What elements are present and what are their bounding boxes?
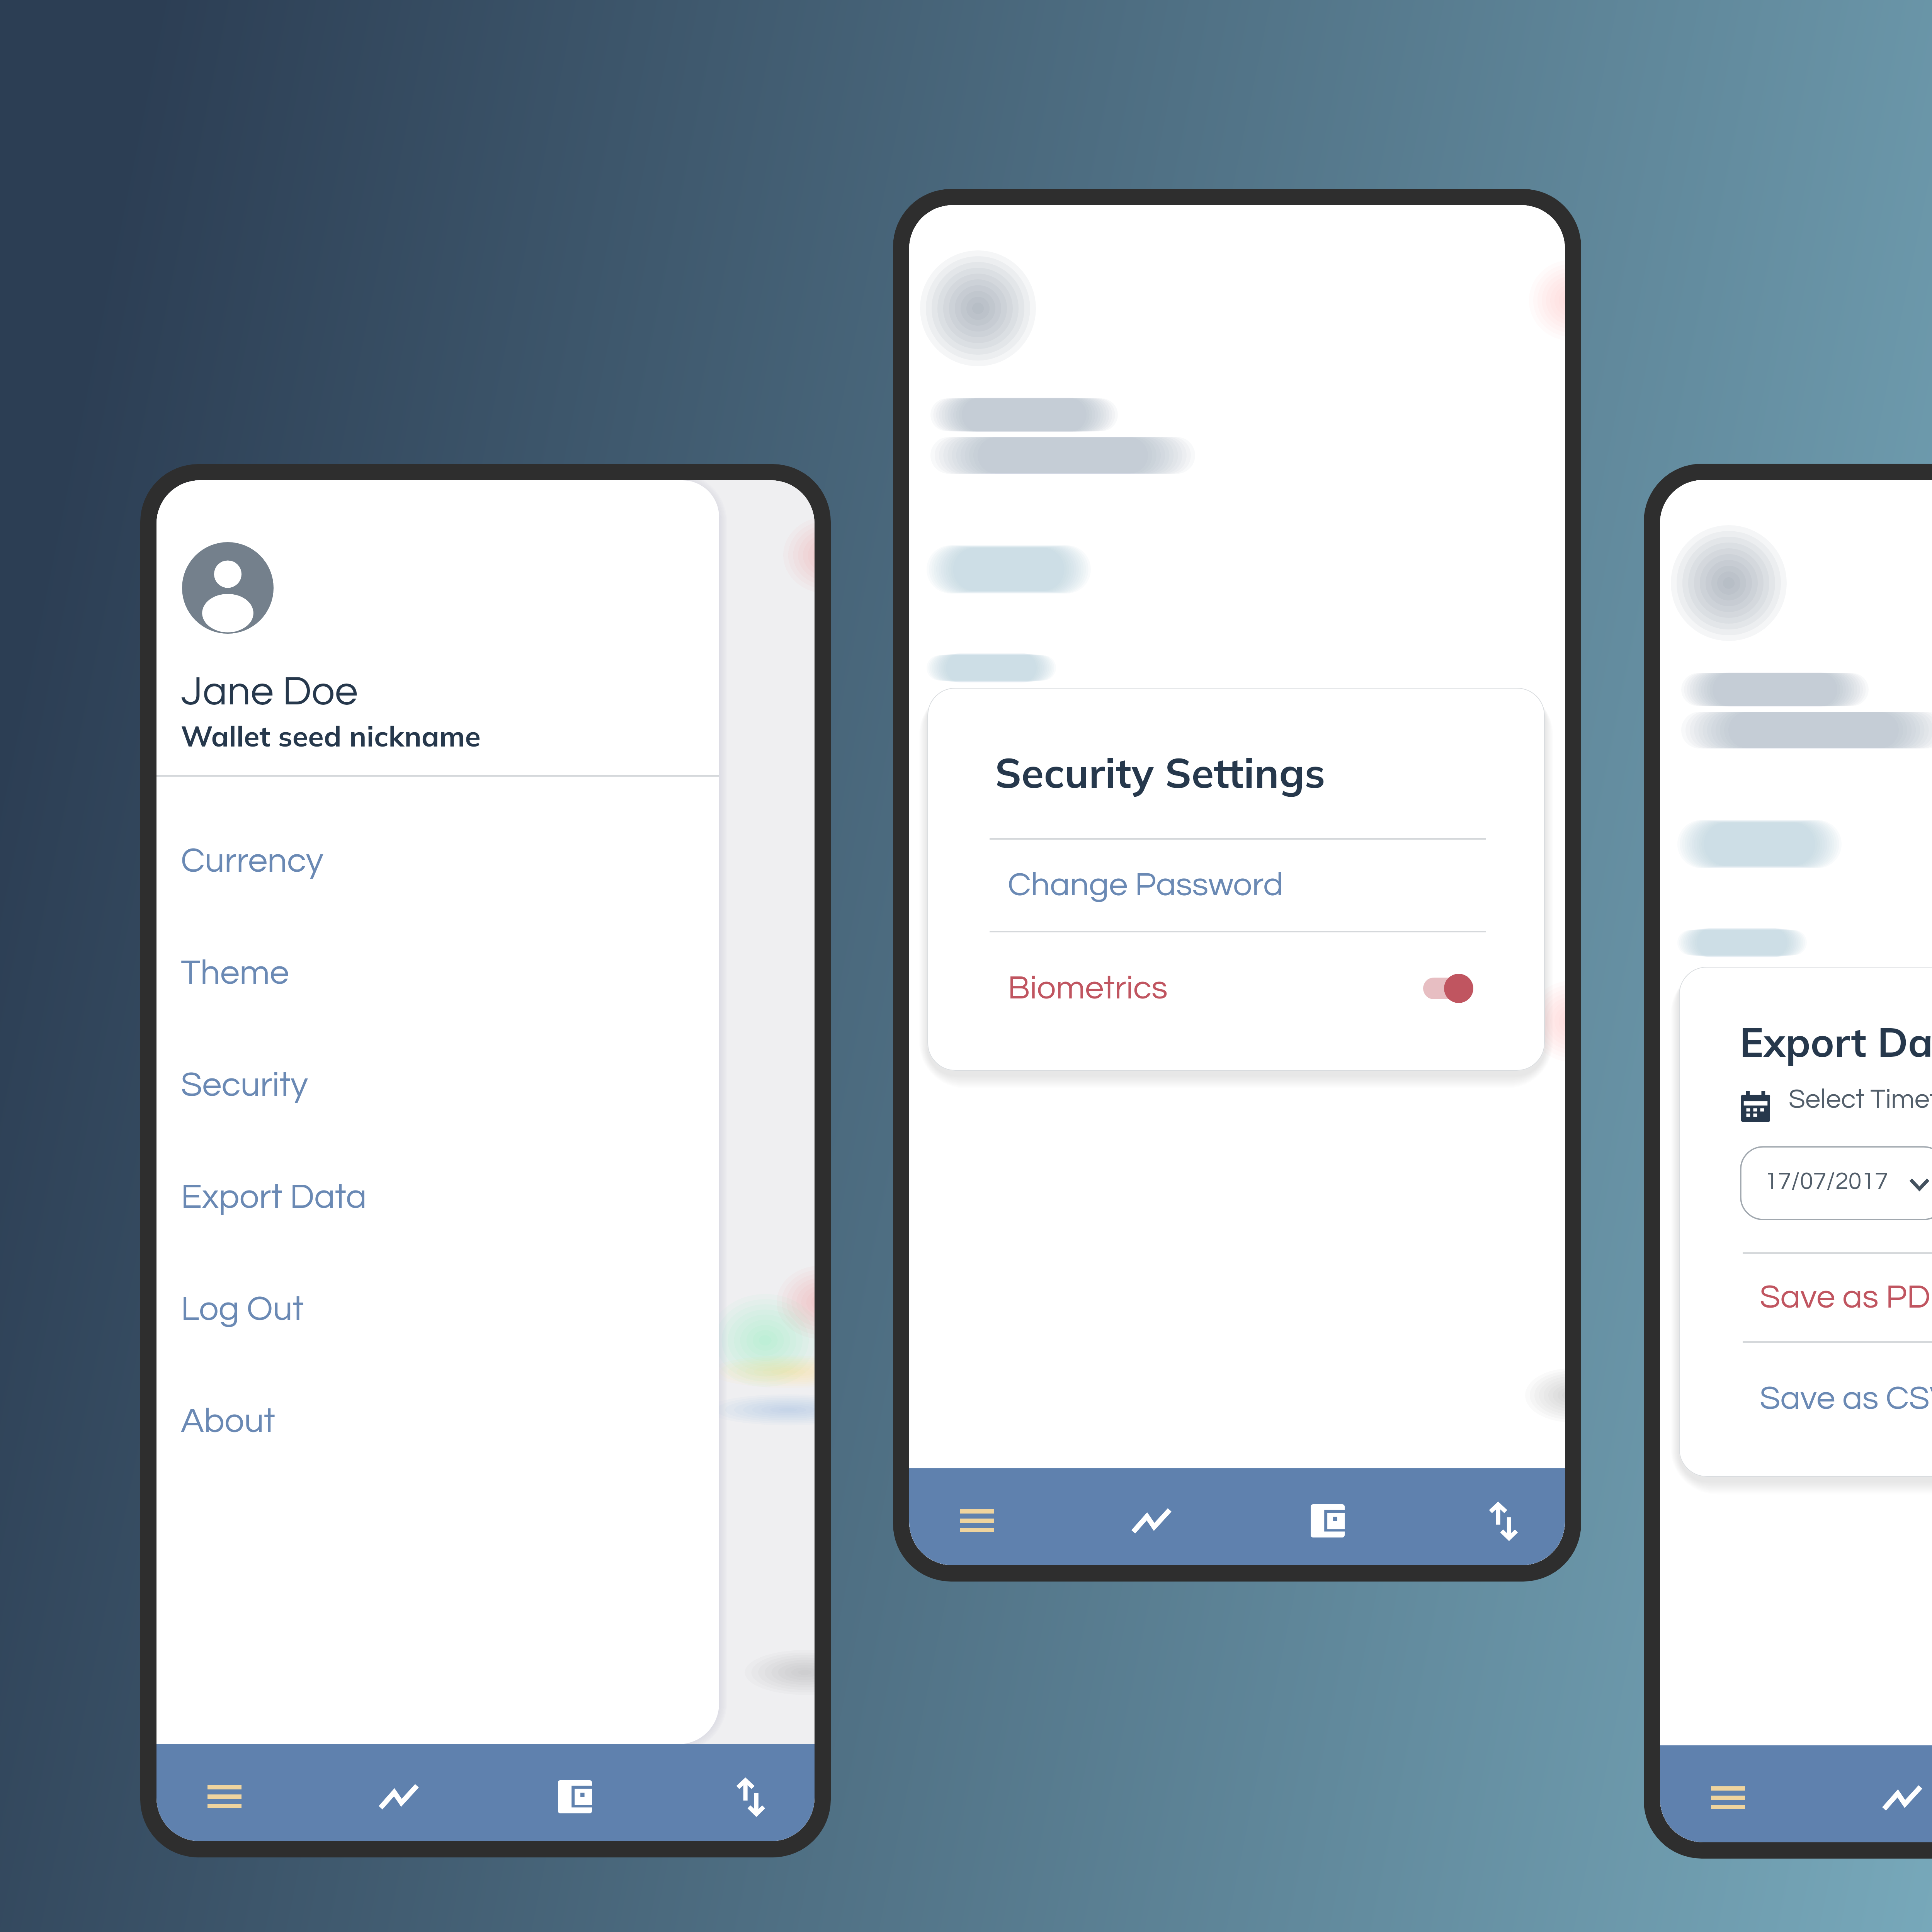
staticText: Export Data	[181, 1179, 367, 1215]
button[interactable]: 17/07/2017	[1741, 1147, 1932, 1219]
button[interactable]: Charts	[356, 1752, 441, 1841]
button[interactable]: Change Password	[990, 840, 1486, 931]
button[interactable]: Menu	[182, 1752, 267, 1841]
button[interactable]: Log Out	[156, 1253, 719, 1365]
staticText: 17/07/2017	[1765, 1169, 1888, 1194]
button[interactable]: Menu	[1685, 1753, 1770, 1842]
button[interactable]: Transfers	[1459, 1477, 1544, 1565]
button[interactable]: Save as CSV	[1743, 1343, 1932, 1455]
staticText: Change Password	[1008, 868, 1284, 903]
button[interactable]: Transfers	[706, 1753, 791, 1841]
staticText: Security Settings	[995, 747, 1325, 798]
button[interactable]: Charts	[1860, 1753, 1932, 1842]
staticText: Log Out	[181, 1291, 304, 1327]
button[interactable]: Wallet	[532, 1752, 617, 1841]
button[interactable]: Biometrics	[990, 932, 1486, 1044]
staticText: Export Data	[1740, 1016, 1932, 1067]
staticText: Wallet seed nickname	[181, 718, 481, 754]
button[interactable]: About	[156, 1365, 719, 1477]
button[interactable]: Charts	[1109, 1476, 1194, 1565]
button[interactable]: Wallet	[1285, 1476, 1370, 1565]
staticText: Select Timeframe	[1789, 1086, 1932, 1114]
staticText: Biometrics	[1008, 971, 1168, 1006]
button[interactable]: Currency	[156, 805, 719, 917]
button[interactable]: Menu	[935, 1476, 1020, 1565]
staticText: Theme	[181, 955, 289, 991]
button[interactable]: Save as PDF	[1743, 1254, 1932, 1341]
button[interactable]: Export Data	[156, 1141, 719, 1253]
staticText: Security	[181, 1067, 308, 1103]
staticText: Currency	[181, 843, 323, 879]
staticText: Save as CSV	[1760, 1381, 1932, 1416]
button[interactable]: Security	[156, 1029, 719, 1141]
button[interactable]: Theme	[156, 917, 719, 1029]
staticText: Jane Doe	[181, 670, 358, 713]
staticText: Save as PDF	[1760, 1280, 1932, 1315]
staticText: About	[181, 1403, 276, 1439]
